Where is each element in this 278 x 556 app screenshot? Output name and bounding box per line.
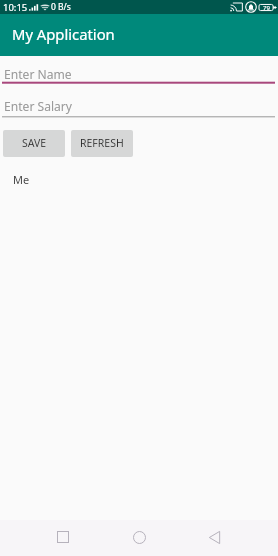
staticText: REFRESH [80, 136, 124, 150]
staticText: Enter Salary [4, 98, 73, 114]
staticText: Enter Name [4, 66, 72, 82]
button[interactable]: Home [101, 520, 177, 556]
button[interactable]: REFRESH [71, 130, 133, 157]
staticText: 0 B/s [51, 1, 71, 13]
button[interactable]: Recent apps [25, 520, 101, 556]
staticText: 10:15 [3, 1, 28, 14]
button[interactable]: Back [176, 520, 252, 556]
staticText: 79 [263, 4, 270, 12]
button[interactable]: SAVE [3, 130, 65, 157]
staticText: My Application [12, 24, 115, 44]
staticText: SAVE [22, 136, 47, 150]
staticText: Me [13, 172, 30, 187]
